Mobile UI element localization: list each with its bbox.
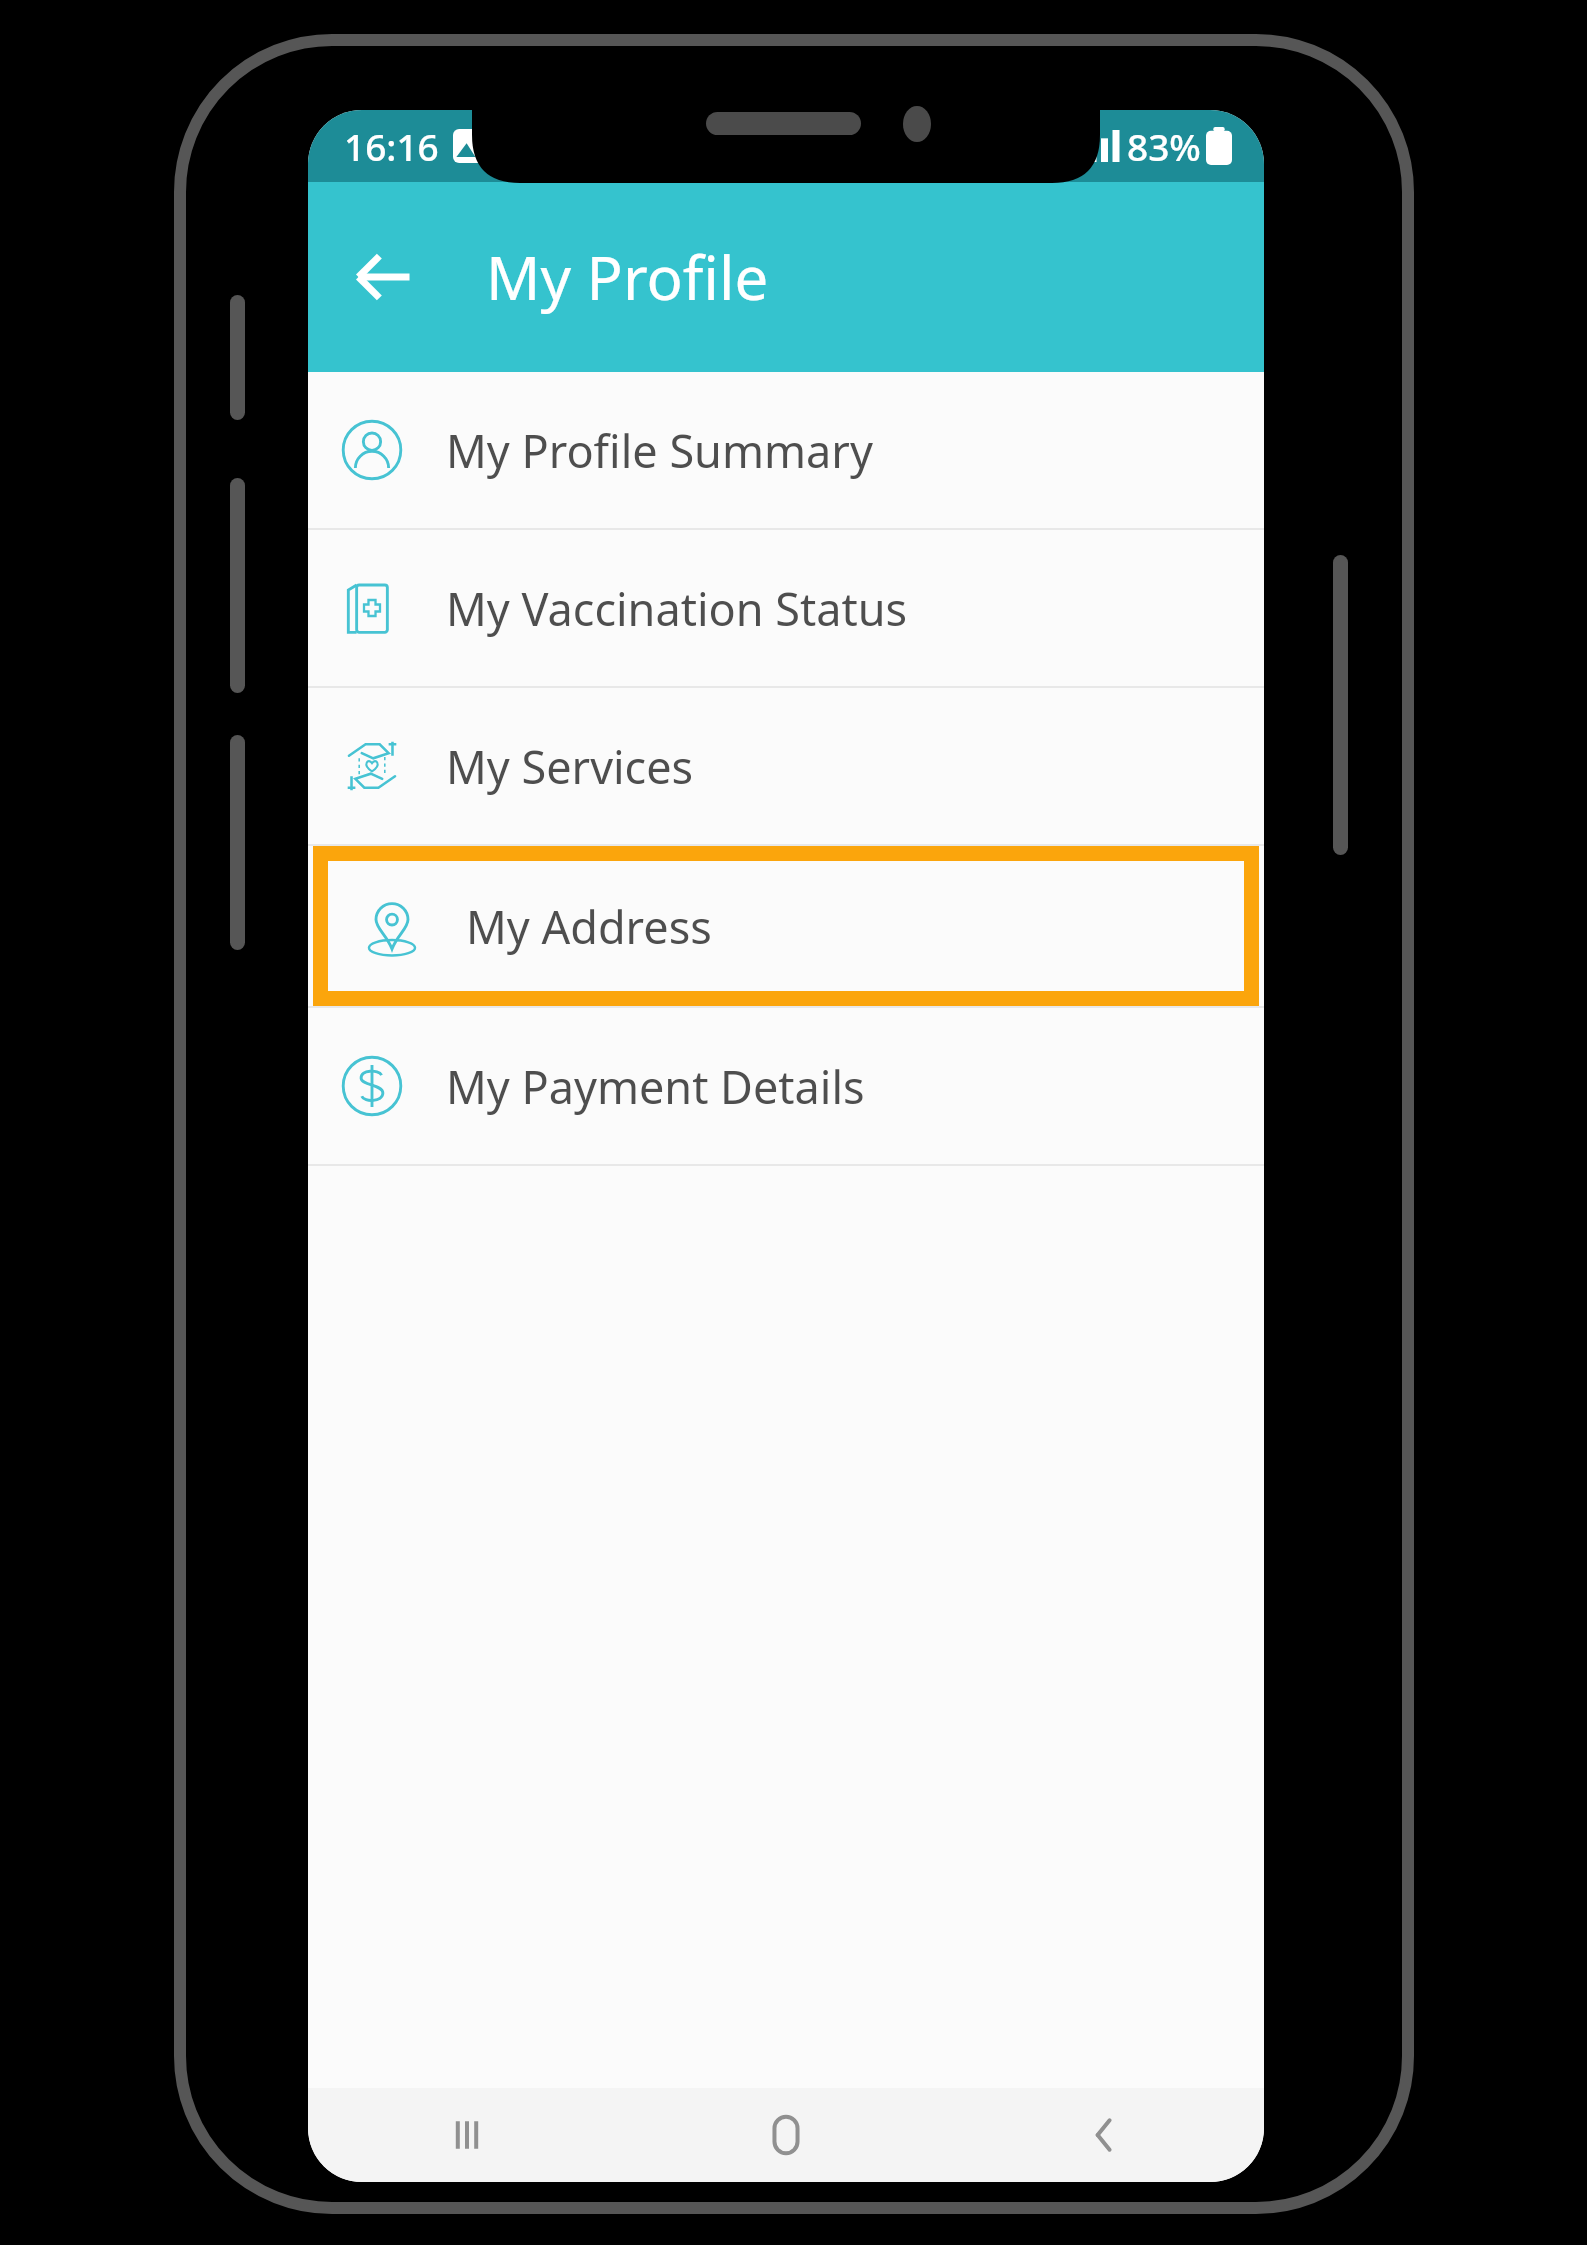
staticText: My Vaccination Status <box>446 578 908 639</box>
button[interactable]: My Payment Details <box>308 1008 1264 1164</box>
staticText: My Services <box>446 736 694 797</box>
button[interactable]: Back <box>945 2088 1264 2182</box>
button[interactable]: Recents <box>308 2088 626 2182</box>
staticText: My Address <box>466 896 712 957</box>
staticText: 16:16 <box>344 121 439 171</box>
staticText: My Profile <box>486 236 769 318</box>
staticText: My Profile Summary <box>446 420 873 481</box>
button[interactable]: My Vaccination Status <box>308 530 1264 686</box>
button[interactable]: My Services <box>308 688 1264 844</box>
staticText: My Payment Details <box>446 1056 865 1117</box>
button[interactable]: Home <box>626 2088 945 2182</box>
button[interactable]: My Address <box>328 861 1244 991</box>
staticText: 83% <box>1127 121 1201 171</box>
button[interactable]: My Profile Summary <box>308 372 1264 528</box>
button[interactable]: Back <box>342 235 426 319</box>
